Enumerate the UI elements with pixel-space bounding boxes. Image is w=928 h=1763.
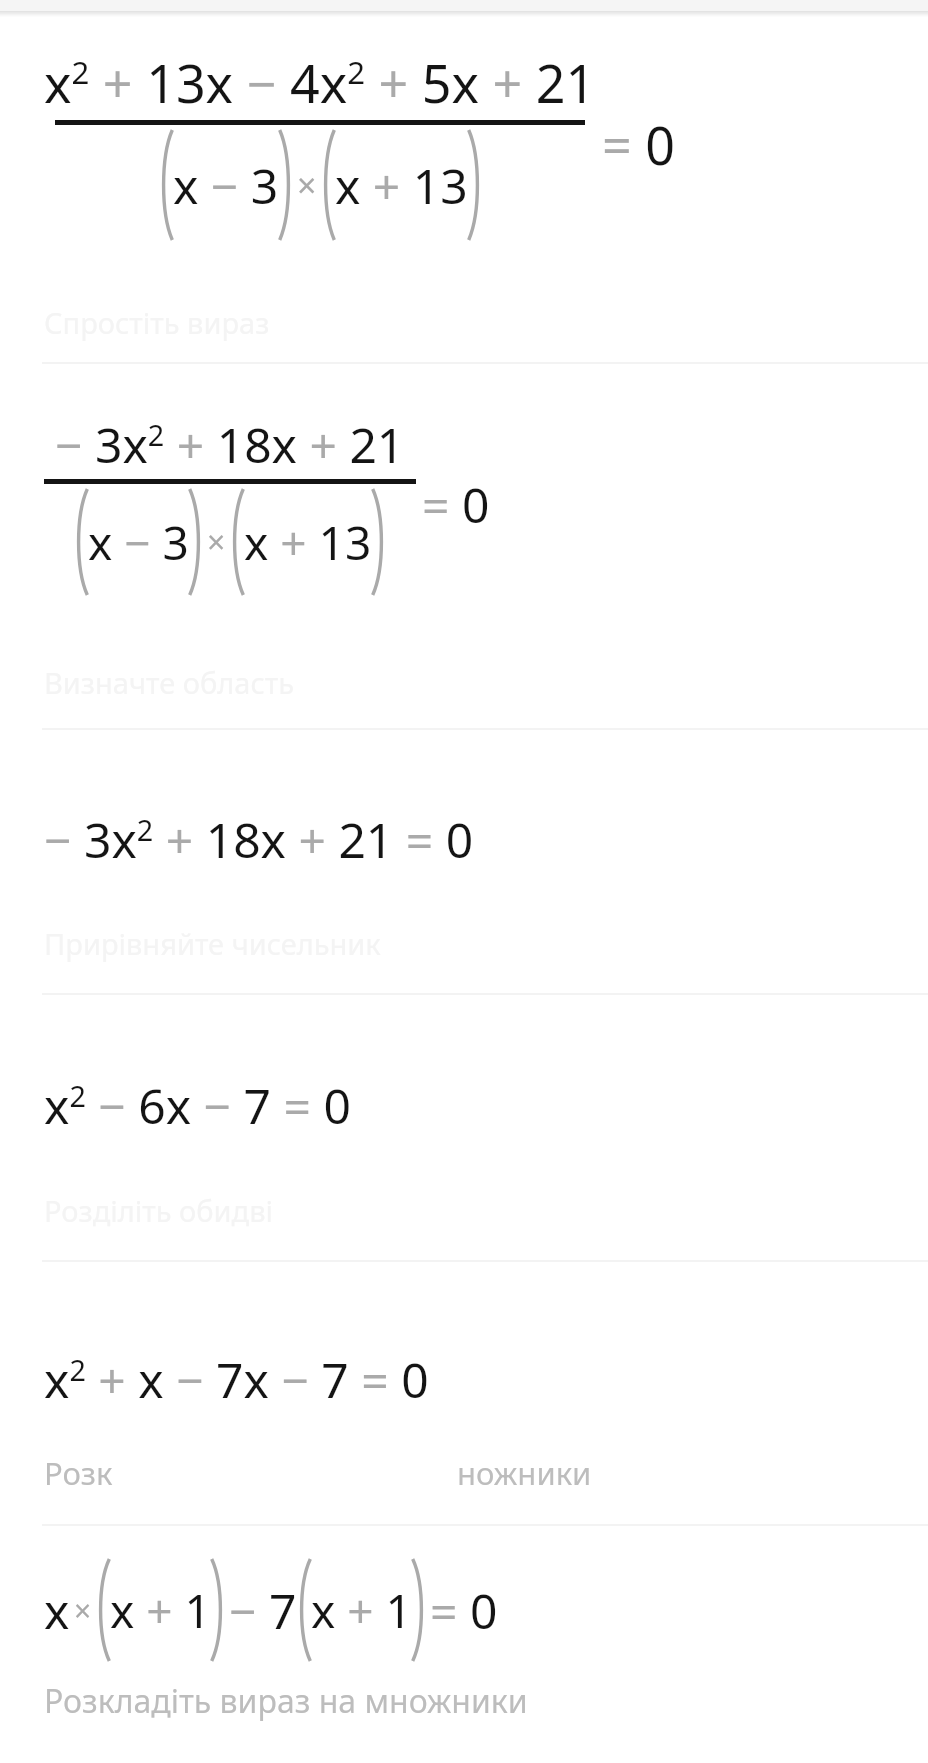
staticText: Прирівняйте чисельник xyxy=(44,924,381,963)
staticText: Спростіть вираз xyxy=(44,303,270,342)
button[interactable]: − 3x2 + 18x + 21 = 0 xyxy=(0,730,928,993)
staticText: − 3x2 + 18x + 21 xyxy=(55,412,405,477)
button[interactable]: x xyxy=(0,1526,928,1763)
staticText: x + 13 xyxy=(335,153,468,218)
staticText: = 0 xyxy=(422,472,490,537)
staticText: x2 − 6x − 7 = 0 xyxy=(44,1073,351,1138)
staticText: − 7 xyxy=(229,1578,297,1643)
staticText: x − 3 xyxy=(88,511,189,574)
staticText: Визначте область xyxy=(44,663,295,702)
staticText: x + 1 xyxy=(311,1579,412,1642)
staticText: Розк xyxy=(44,1452,113,1494)
staticText: x + 1 xyxy=(110,1579,211,1642)
staticText: Розділіть обидві xyxy=(44,1191,274,1230)
staticText: × xyxy=(297,162,317,208)
staticText: Розкладіть вираз на множники xyxy=(44,1679,528,1723)
staticText: = 0 xyxy=(430,1578,498,1643)
button[interactable]: x2 − 6x − 7 = 0 xyxy=(0,995,928,1260)
button[interactable]: − 3x2 + 18x + 21 xyxy=(0,364,928,728)
staticText: ножники xyxy=(457,1452,592,1494)
staticText: − 3x2 + 18x + 21 = 0 xyxy=(44,807,474,872)
button[interactable]: x2 + x − 7x − 7 = 0 xyxy=(0,1262,928,1524)
button[interactable]: x2 + 13x − 4x2 + 5x + 21 xyxy=(0,17,928,362)
staticText: = 0 xyxy=(602,109,676,180)
staticText: x − 3 xyxy=(173,153,279,218)
staticText: x2 + x − 7x − 7 = 0 xyxy=(44,1347,429,1412)
staticText: x + 13 xyxy=(244,511,372,574)
staticText: × xyxy=(207,520,226,564)
staticText: x2 + 13x − 4x2 + 5x + 21 xyxy=(44,47,596,118)
staticText: × xyxy=(74,1590,92,1631)
staticText: x xyxy=(44,1578,70,1643)
